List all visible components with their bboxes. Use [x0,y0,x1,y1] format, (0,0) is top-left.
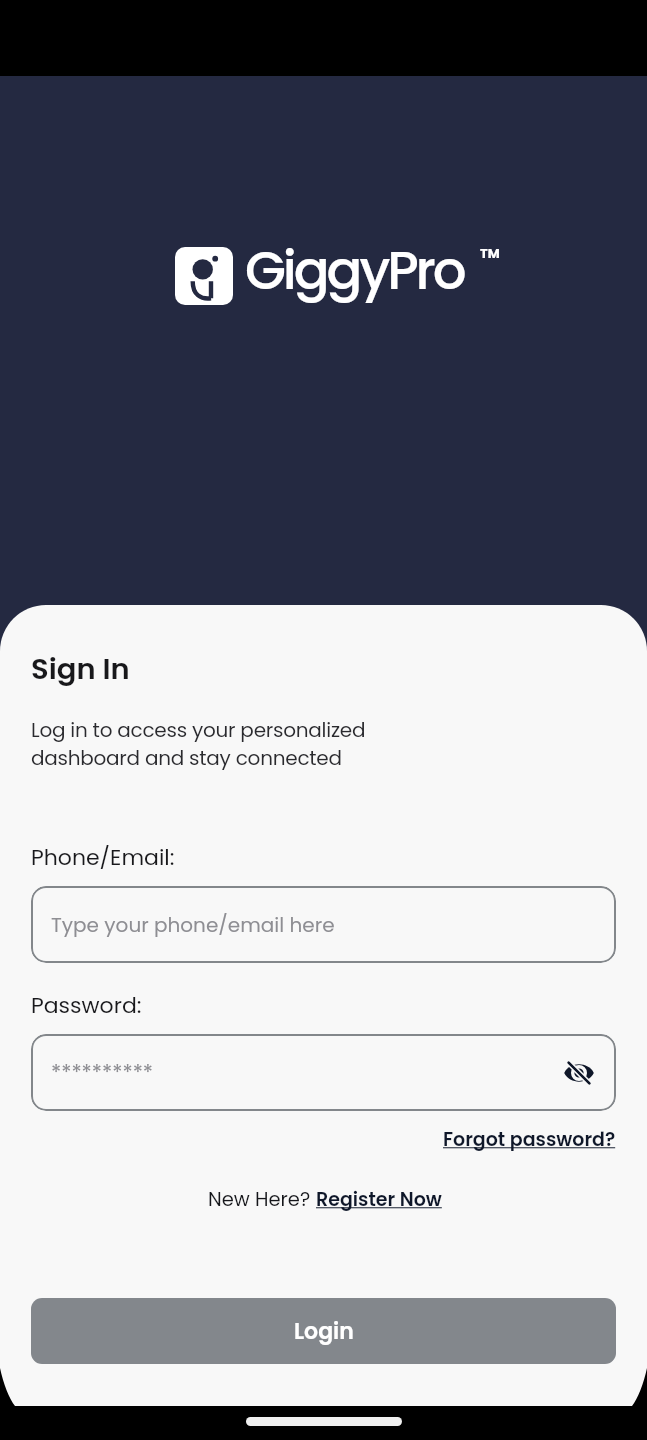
button[interactable]: Type your phone/email here [31,886,616,963]
button[interactable]: Register Now [316,1186,442,1213]
button[interactable]: ********** [31,1034,616,1111]
staticText: Type your phone/email here [51,911,335,939]
staticText: GiggyPro [245,233,464,307]
staticText: ********** [51,1058,154,1087]
button[interactable]: Show password [558,1052,600,1094]
button[interactable]: Login [31,1298,616,1364]
staticText: Log in to access your personalized dashb… [31,716,366,772]
staticText: TM [480,244,500,262]
staticText: Forgot password? [443,1126,616,1153]
staticText: Phone/Email: [31,842,175,873]
staticText: Password: [31,990,142,1021]
staticText: Sign In [31,649,130,690]
button[interactable]: Forgot password? [443,1126,616,1153]
staticText: New Here? [208,1186,316,1213]
staticText: Login [294,1316,354,1347]
staticText: Register Now [316,1186,442,1213]
